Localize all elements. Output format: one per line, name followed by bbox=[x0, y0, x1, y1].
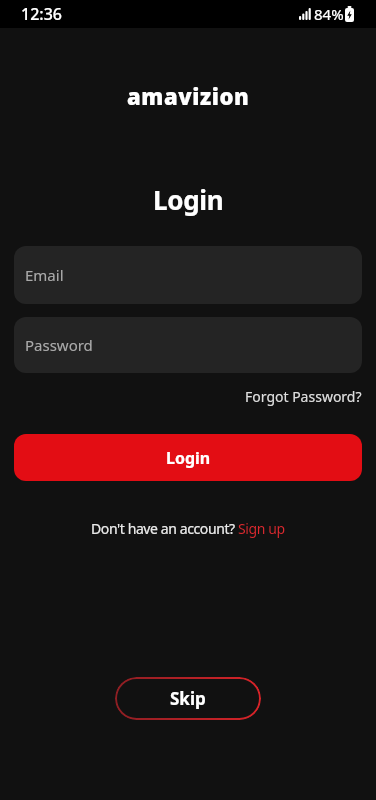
button[interactable]: Skip bbox=[115, 677, 261, 720]
button[interactable]: Email bbox=[14, 246, 362, 304]
staticText: 84% bbox=[314, 4, 344, 24]
staticText: Skip bbox=[170, 687, 206, 710]
button[interactable]: Forgot Password? bbox=[245, 387, 362, 406]
staticText: 12:36 bbox=[21, 3, 62, 25]
staticText: Password bbox=[25, 335, 93, 355]
button[interactable]: Sign up bbox=[238, 519, 285, 538]
staticText: amavizion bbox=[127, 81, 250, 111]
button[interactable]: Login bbox=[14, 434, 362, 481]
staticText: Don't have an account? bbox=[91, 519, 238, 538]
staticText: Login bbox=[153, 182, 224, 217]
staticText: Email bbox=[25, 265, 64, 285]
button[interactable]: Password bbox=[14, 317, 362, 373]
staticText: Login bbox=[166, 447, 211, 469]
